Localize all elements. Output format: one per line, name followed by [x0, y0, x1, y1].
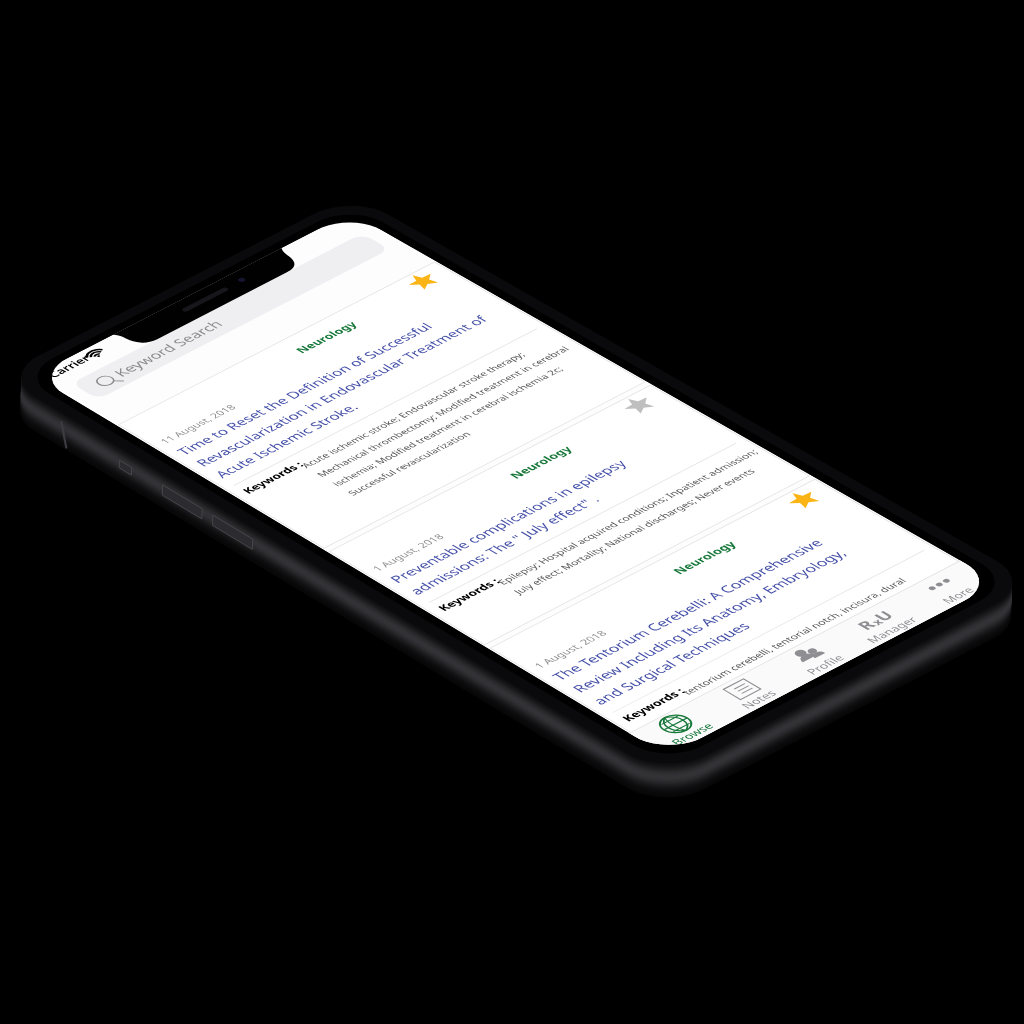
button[interactable]: Article browser phone mockup: [0, 0, 1024, 1024]
